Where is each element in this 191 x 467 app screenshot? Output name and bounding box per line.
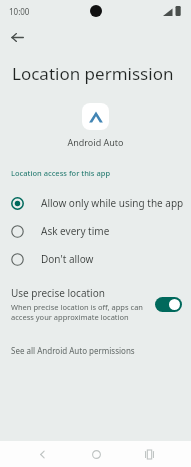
button[interactable]: Back: [31, 443, 53, 465]
staticText: Allow only while using the app: [41, 196, 184, 210]
staticText: Location permission: [12, 62, 174, 85]
button[interactable]: Use precise location: [0, 282, 191, 326]
button[interactable]: Ask every time: [0, 217, 191, 245]
staticText: 10:00: [9, 6, 30, 17]
button[interactable]: Back: [4, 24, 30, 50]
button[interactable]: See all Android Auto permissions: [0, 342, 191, 359]
staticText: When precise location is off, apps can a…: [11, 302, 143, 322]
staticText: See all Android Auto permissions: [11, 345, 135, 356]
staticText: Use precise location: [11, 286, 105, 300]
button[interactable]: Don't allow: [0, 245, 191, 273]
staticText: Location access for this app: [11, 168, 111, 178]
button[interactable]: Use precise location toggle: [155, 297, 182, 312]
staticText: Android Auto: [67, 136, 124, 148]
button[interactable]: Allow only while using the app: [0, 189, 191, 217]
button[interactable]: Home: [85, 443, 107, 465]
staticText: Don't allow: [41, 252, 94, 266]
staticText: Ask every time: [41, 224, 110, 238]
button[interactable]: Recent apps: [138, 443, 160, 465]
